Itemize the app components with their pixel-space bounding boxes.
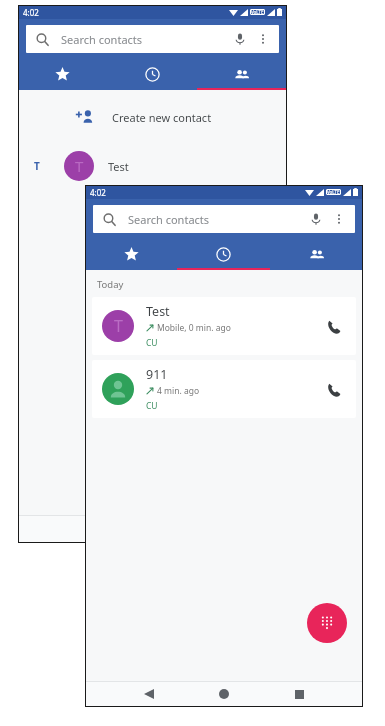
button[interactable]: More options xyxy=(251,27,275,51)
button[interactable]: Favourites xyxy=(18,59,107,90)
staticText: Search contacts xyxy=(61,32,143,47)
button[interactable]: More options xyxy=(327,207,351,231)
staticText: 4:02 xyxy=(23,7,39,18)
staticText: Test xyxy=(108,159,129,174)
staticText: CU xyxy=(146,337,158,349)
staticText: Mobile, 0 min. ago xyxy=(157,322,231,334)
staticText: T xyxy=(75,156,84,176)
button[interactable]: Recents xyxy=(288,683,310,705)
button[interactable]: Favourites xyxy=(85,239,177,270)
staticText: T xyxy=(114,315,123,337)
button[interactable]: Dialpad xyxy=(307,603,347,643)
button[interactable]: Contacts xyxy=(197,59,287,90)
staticText: 4:02 xyxy=(90,187,106,198)
button[interactable]: T xyxy=(92,297,356,355)
button[interactable]: Back xyxy=(138,683,160,705)
staticText: Today xyxy=(97,278,124,291)
staticText: 4 min. ago xyxy=(157,385,200,397)
button[interactable]: Voice search xyxy=(305,208,327,230)
button[interactable]: T xyxy=(18,146,287,186)
staticText: Create new contact xyxy=(112,110,212,125)
staticText: T xyxy=(34,159,40,173)
button[interactable]: Voice search xyxy=(229,28,251,50)
button[interactable]: Recents xyxy=(177,239,270,270)
staticText: Test xyxy=(146,303,170,320)
button[interactable]: 911 xyxy=(92,360,356,418)
staticText: 911 xyxy=(146,366,168,383)
button[interactable]: Call xyxy=(316,309,350,343)
button[interactable]: Recents xyxy=(107,59,197,90)
staticText: VoLTE xyxy=(327,189,340,195)
button[interactable]: Contacts xyxy=(270,239,363,270)
button[interactable]: Call xyxy=(316,372,350,406)
staticText: Search contacts xyxy=(128,212,210,227)
button[interactable]: Home xyxy=(213,683,235,705)
button[interactable]: Create new contact xyxy=(18,100,287,134)
button[interactable]: Search contacts xyxy=(93,205,355,233)
staticText: CU xyxy=(146,400,158,412)
button[interactable]: Search contacts xyxy=(26,25,279,53)
staticText: VoLTE xyxy=(251,9,264,15)
